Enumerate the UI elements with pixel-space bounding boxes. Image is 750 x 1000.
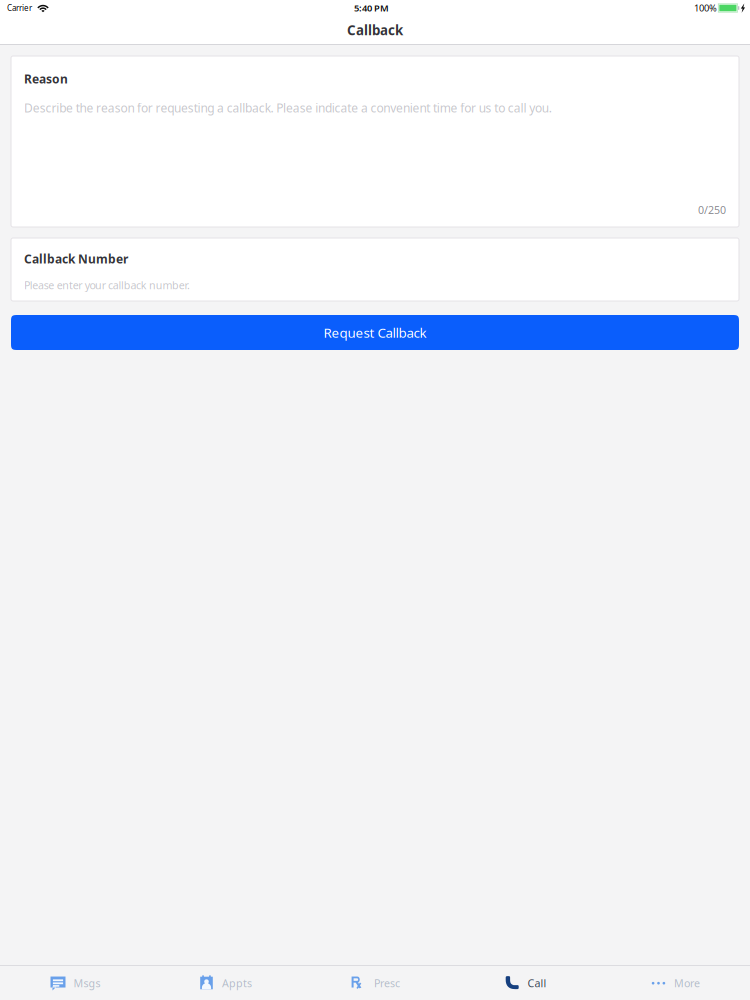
- staticText: 100%: [694, 2, 717, 14]
- staticText: 5:40 PM: [354, 2, 389, 14]
- staticText: 0/250: [698, 203, 726, 217]
- staticText: Describe the reason for requesting a cal…: [24, 100, 552, 116]
- staticText: Callback Number: [24, 251, 128, 267]
- staticText: Please enter your callback number.: [24, 278, 190, 292]
- staticText: Call: [527, 976, 546, 990]
- button[interactable]: Call: [450, 966, 600, 1000]
- button[interactable]: Appts: [150, 966, 300, 1000]
- staticText: Reason: [24, 71, 68, 87]
- button[interactable]: Presc: [300, 966, 450, 1000]
- button[interactable]: Request Callback: [11, 315, 739, 350]
- staticText: Request Callback: [323, 324, 426, 341]
- staticText: More: [674, 976, 700, 990]
- staticText: Appts: [222, 976, 252, 990]
- button[interactable]: Msgs: [0, 966, 150, 1000]
- button[interactable]: More: [600, 966, 750, 1000]
- staticText: Carrier: [7, 3, 32, 13]
- staticText: Callback: [347, 21, 403, 39]
- staticText: Msgs: [73, 976, 100, 990]
- staticText: Presc: [374, 976, 400, 990]
